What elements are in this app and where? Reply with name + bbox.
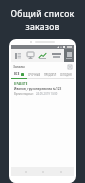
button[interactable]: СРОЧНЫЕ — [26, 70, 42, 78]
button[interactable]: В РАБОТЕ — [11, 79, 74, 99]
button[interactable]: Selected tab — [64, 49, 74, 62]
staticText: СРОЧНЫЕ — [28, 73, 41, 76]
staticText: ВСЕ — [14, 72, 20, 76]
button[interactable]: Home — [39, 168, 46, 175]
button[interactable]: Filter — [67, 64, 72, 69]
button[interactable]: Grid view — [11, 49, 24, 62]
button[interactable] — [48, 49, 64, 62]
button[interactable]: Chart — [36, 49, 48, 62]
staticText: Иванов, грузоперевозка №123 — [14, 87, 62, 91]
staticText: заказов — [0, 21, 85, 33]
button[interactable]: Monitor — [24, 49, 36, 62]
button[interactable]: ПРЕДОПЛ — [42, 70, 58, 78]
staticText: В РАБОТЕ — [14, 82, 28, 86]
staticText: ПРЕДОПЛ — [44, 73, 57, 76]
staticText: Время подачи: — [14, 92, 34, 96]
staticText: Заказы — [13, 64, 25, 69]
staticText: СЕГОДНЯ — [60, 73, 72, 76]
button[interactable]: Recents — [57, 168, 64, 175]
staticText: 24.05.2019 13:00 — [36, 92, 58, 96]
button[interactable]: Back — [22, 168, 29, 175]
staticText: Общий список — [0, 8, 85, 20]
button[interactable]: ВСЕ — [11, 70, 26, 78]
button[interactable]: СЕГОДНЯ — [58, 70, 74, 78]
